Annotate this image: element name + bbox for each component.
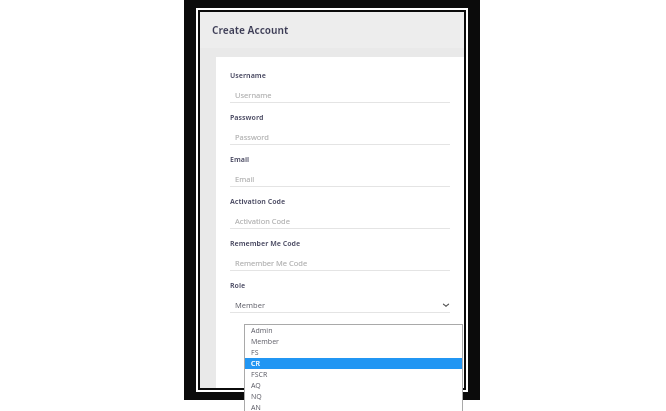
staticText: Email <box>235 174 255 184</box>
button[interactable]: AQ <box>245 380 462 391</box>
button[interactable]: Activation Code <box>230 213 450 229</box>
staticText: Remember Me Code <box>230 239 301 249</box>
button[interactable]: Password <box>230 129 450 145</box>
button[interactable]: AN <box>245 402 462 411</box>
button[interactable]: Member <box>245 336 462 347</box>
staticText: Create Account <box>212 23 289 37</box>
button[interactable]: FSCR <box>245 369 462 380</box>
button[interactable]: CR <box>245 358 462 369</box>
staticText: Activation Code <box>235 216 290 226</box>
button[interactable]: FS <box>245 347 462 358</box>
staticText: Admin <box>251 326 273 336</box>
staticText: Member <box>251 337 279 347</box>
staticText: FS <box>251 348 259 358</box>
staticText: Username <box>230 71 266 81</box>
staticText: Email <box>230 155 250 165</box>
button[interactable]: Remember Me Code <box>230 255 450 271</box>
staticText: AN <box>251 403 261 411</box>
staticText: Password <box>230 113 264 123</box>
button[interactable]: Role selector <box>230 297 450 313</box>
button[interactable]: NQ <box>245 391 462 402</box>
staticText: AQ <box>251 381 261 391</box>
staticText: FSCR <box>251 370 268 380</box>
staticText: Username <box>235 90 272 100</box>
button[interactable]: Username <box>230 87 450 103</box>
staticText: NQ <box>251 392 262 402</box>
staticText: CR <box>251 359 260 369</box>
staticText: Role <box>230 281 246 291</box>
staticText: Remember Me Code <box>235 258 308 268</box>
staticText: Activation Code <box>230 197 286 207</box>
staticText: Password <box>235 132 269 142</box>
button[interactable]: Email <box>230 171 450 187</box>
button[interactable]: Admin <box>245 325 462 336</box>
staticText: Member <box>235 300 265 310</box>
